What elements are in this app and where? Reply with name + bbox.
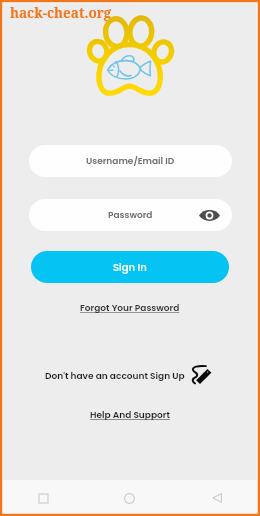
staticText: hack-cheat.org — [10, 4, 112, 22]
button[interactable]: Back — [173, 480, 260, 516]
button[interactable]: Sign Up — [188, 364, 216, 388]
button[interactable]: Don't have an account Sign Up — [45, 370, 185, 383]
button[interactable]: Recents — [0, 480, 86, 516]
staticText: Username/Email ID — [86, 155, 175, 168]
button[interactable]: Show password — [198, 204, 220, 226]
button[interactable]: Forgot Your Password — [80, 302, 180, 315]
staticText: Password — [108, 209, 153, 222]
button[interactable]: Password — [29, 199, 232, 231]
button[interactable]: Home — [86, 480, 173, 516]
button[interactable]: Sign In — [31, 251, 229, 283]
staticText: Sign In — [113, 260, 147, 274]
button[interactable]: Username/Email ID — [29, 145, 232, 177]
button[interactable]: Help And Support — [90, 409, 170, 422]
